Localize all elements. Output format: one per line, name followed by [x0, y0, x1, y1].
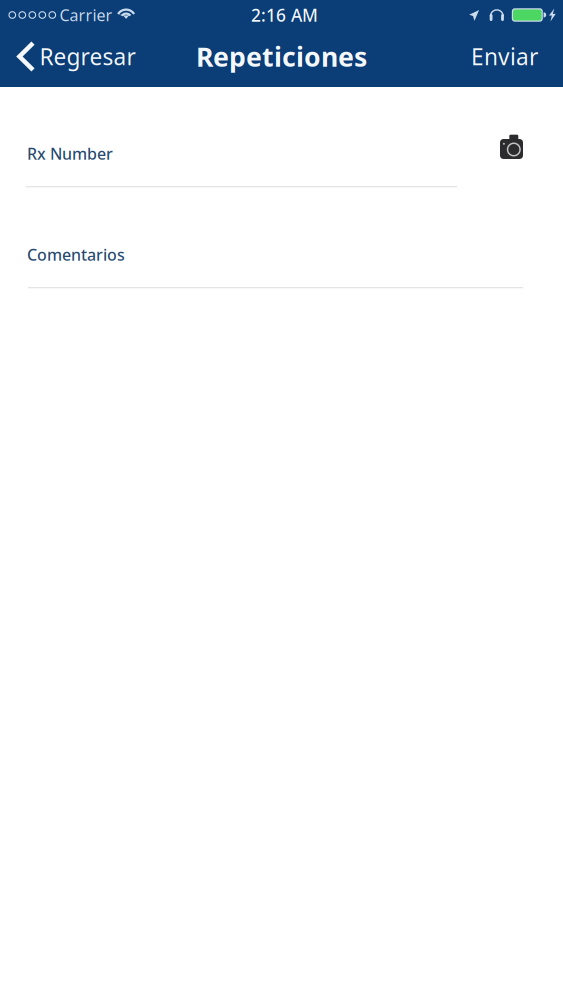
- staticText: Comentarios: [27, 244, 125, 265]
- staticText: Enviar: [471, 41, 538, 71]
- staticText: Rx Number: [27, 143, 113, 164]
- staticText: Carrier: [60, 4, 113, 26]
- button[interactable]: Take photo: [498, 135, 524, 163]
- button[interactable]: Enviar: [471, 35, 563, 81]
- staticText: Repeticiones: [196, 39, 367, 74]
- button[interactable]: Regresar: [0, 34, 134, 82]
- staticText: Regresar: [39, 41, 135, 71]
- staticText: 2:16 AM: [251, 3, 318, 26]
